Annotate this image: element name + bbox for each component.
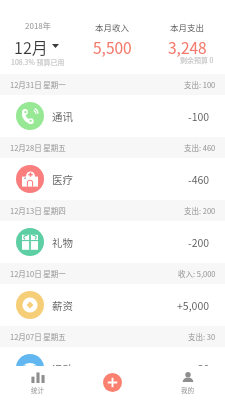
staticText: 剩余预算 0 — [180, 55, 214, 65]
staticText: +5,000 — [177, 298, 210, 313]
staticText: 运动 — [52, 361, 73, 376]
button[interactable]: 医疗 — [0, 158, 225, 200]
staticText: 本月收入 — [95, 21, 130, 33]
staticText: 统计 — [31, 385, 44, 394]
staticText: 支出: 30 — [188, 331, 216, 342]
button[interactable]: 通讯 — [0, 95, 225, 137]
button[interactable]: 运动 — [0, 347, 225, 389]
staticText: 支出: 460 — [184, 142, 216, 153]
staticText: -460 — [188, 172, 210, 187]
staticText: -200 — [188, 235, 210, 250]
staticText: 108.3% 预算已用 — [11, 57, 65, 67]
staticText: 12月28日 星期五 — [10, 142, 66, 153]
staticText: 医疗 — [52, 172, 73, 187]
button[interactable]: 薪资 — [0, 284, 225, 326]
staticText: 支出: 100 — [184, 79, 216, 90]
staticText: -100 — [188, 109, 210, 124]
staticText: 我的 — [181, 385, 194, 394]
button[interactable]: Add record — [103, 373, 122, 392]
button[interactable]: 礼物 — [0, 221, 225, 263]
staticText: 礼物 — [52, 235, 73, 250]
staticText: 12月13日 星期四 — [10, 205, 66, 216]
staticText: 本月支出 — [170, 21, 205, 33]
staticText: 支出: 200 — [184, 205, 216, 216]
button[interactable]: 统计 — [0, 366, 75, 400]
staticText: 3,248 — [168, 36, 207, 58]
staticText: 收入: 5,000 — [178, 268, 216, 279]
staticText: 12月07日 星期五 — [10, 331, 66, 342]
staticText: 通讯 — [52, 109, 73, 124]
staticText: 薪资 — [52, 298, 73, 313]
staticText: 12月 — [14, 35, 48, 58]
button[interactable]: 我的 — [150, 366, 225, 400]
staticText: 12月31日 星期一 — [10, 79, 66, 90]
staticText: 5,500 — [93, 36, 132, 58]
staticText: 2018年 — [25, 20, 51, 32]
staticText: -30 — [194, 361, 210, 376]
staticText: 12月10日 星期一 — [10, 268, 66, 279]
